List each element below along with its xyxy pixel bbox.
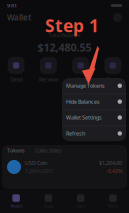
button[interactable]: Refresh xyxy=(62,126,126,141)
staticText: Hide Balances xyxy=(66,98,100,105)
staticText: Swap xyxy=(106,76,119,83)
button[interactable]: Swap xyxy=(32,190,64,213)
button[interactable]: Send xyxy=(0,57,32,83)
staticText: $1,204.00 xyxy=(99,159,122,166)
button[interactable]: USD Coin xyxy=(2,156,127,178)
button[interactable]: Swap xyxy=(97,57,129,83)
staticText: USD Coin xyxy=(25,159,47,166)
staticText: $12,480.55 xyxy=(37,40,91,54)
button[interactable]: Tokens xyxy=(5,147,27,154)
button[interactable]: Manage Tokens xyxy=(62,78,126,93)
staticText: Manage Tokens xyxy=(66,82,105,89)
staticText: Wallet xyxy=(11,203,22,209)
button[interactable]: Wallet xyxy=(0,190,32,213)
button[interactable]: Collectibles xyxy=(33,147,64,154)
staticText: 9:41 xyxy=(7,2,17,9)
staticText: More xyxy=(108,203,118,209)
button[interactable]: Receive xyxy=(32,57,64,83)
staticText: Buy xyxy=(76,76,85,83)
button[interactable]: Buy xyxy=(64,57,97,83)
staticText: 1,204 USDC xyxy=(25,167,53,175)
staticText: Wallet Settings xyxy=(66,114,102,121)
staticText: -0.42% xyxy=(106,167,122,175)
staticText: Step 1 xyxy=(45,14,99,37)
button[interactable]: Wallet Settings xyxy=(62,110,126,125)
staticText: Tokens xyxy=(7,147,25,154)
staticText: Earn xyxy=(77,203,85,209)
button[interactable]: Hide Balances xyxy=(62,94,126,109)
staticText: Swap xyxy=(44,203,53,209)
staticText: Wallet xyxy=(7,12,31,23)
staticText: Refresh xyxy=(66,130,85,137)
button[interactable]: Earn xyxy=(64,190,97,213)
staticText: Send xyxy=(10,76,22,83)
staticText: Receive xyxy=(39,76,58,83)
staticText: Total Balance xyxy=(48,32,80,39)
staticText: Collectibles xyxy=(35,147,62,154)
button[interactable]: More xyxy=(97,190,129,213)
